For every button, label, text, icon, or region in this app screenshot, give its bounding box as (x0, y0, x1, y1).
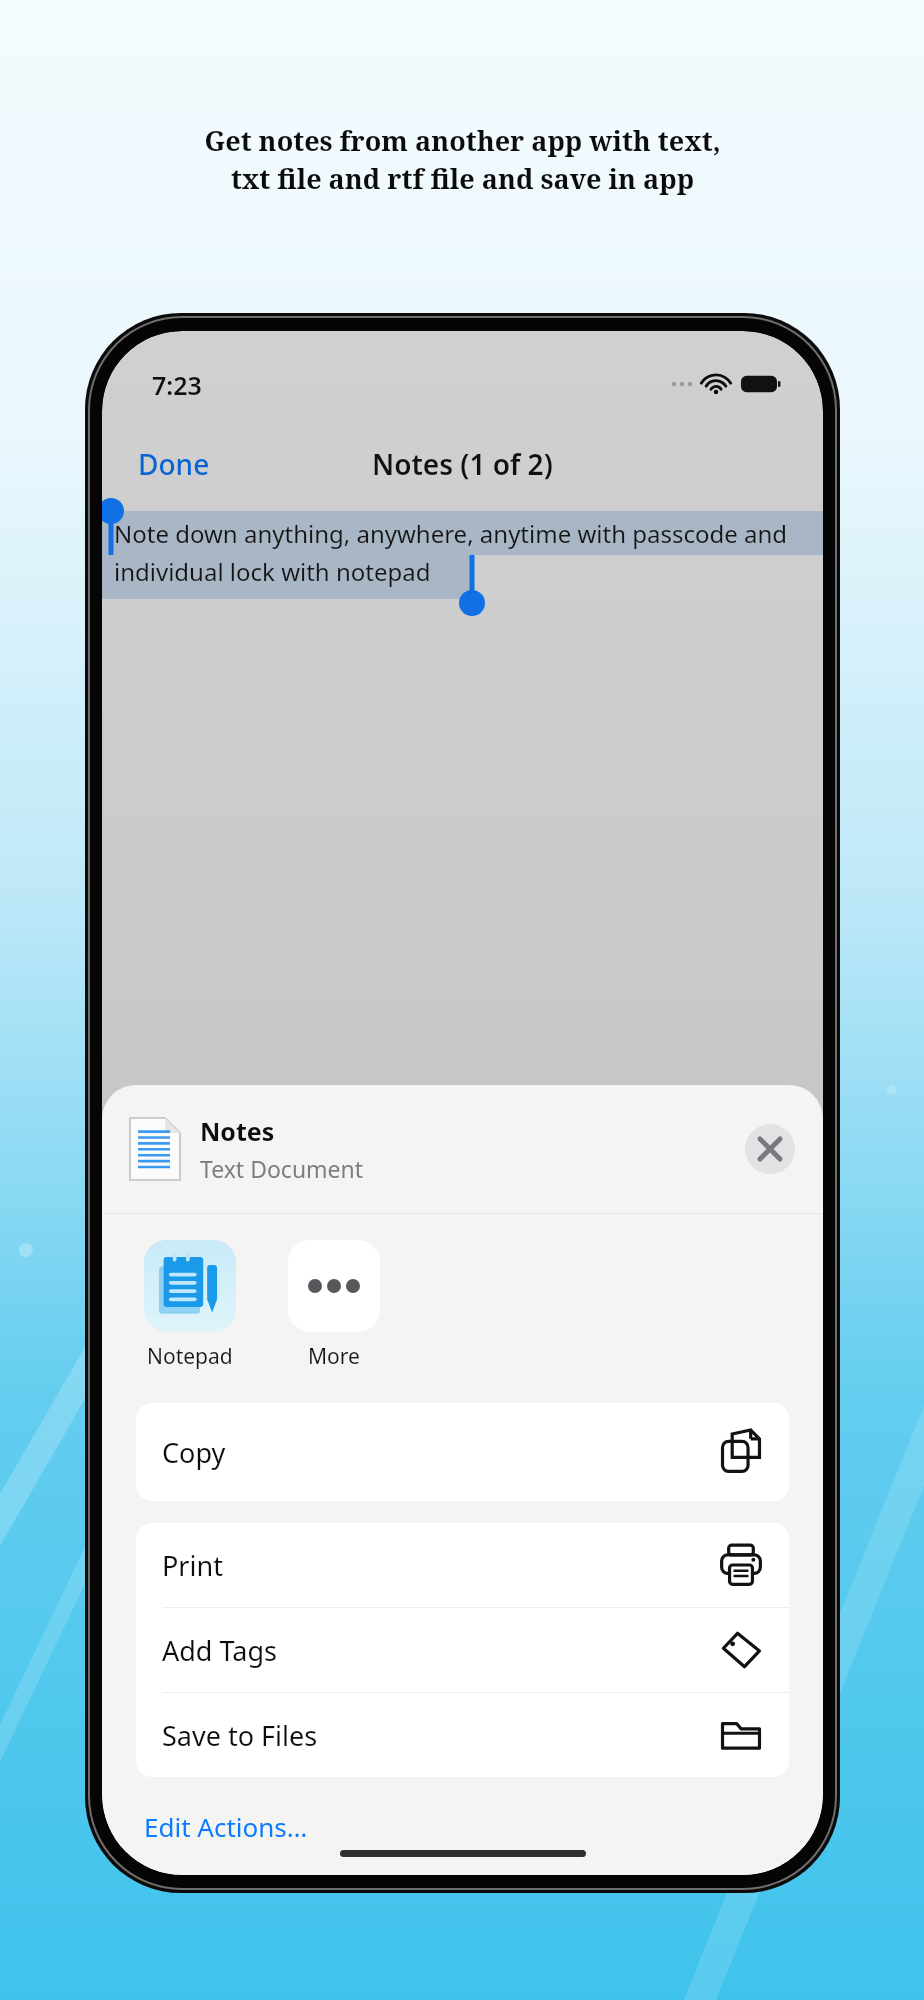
button[interactable]: Add Tags (136, 1608, 789, 1693)
staticText: Note down anything, anywhere, anytime wi… (114, 517, 788, 550)
staticText: 7:23 (152, 368, 202, 402)
staticText: Copy (162, 1434, 719, 1471)
staticText: Text Document (200, 1153, 364, 1184)
staticText: Get notes from another app with text, tx… (204, 122, 721, 197)
button[interactable]: Print (136, 1523, 789, 1608)
staticText: Save to Files (162, 1717, 719, 1754)
staticText: Done (138, 445, 210, 483)
button[interactable]: Notepad (138, 1240, 242, 1371)
staticText: Notes (1 of 2) (372, 445, 553, 483)
staticText: Notes (200, 1114, 275, 1148)
button[interactable]: More (282, 1240, 386, 1371)
staticText: Print (162, 1547, 719, 1584)
staticText: individual lock with notepad app. (114, 555, 472, 599)
staticText: Edit Actions… (144, 1809, 308, 1844)
button[interactable]: Save to Files (136, 1693, 789, 1777)
staticText: More (308, 1342, 360, 1371)
button[interactable]: Edit Actions… (102, 1803, 823, 1850)
button[interactable]: Done (102, 437, 226, 491)
staticText: Add Tags (162, 1632, 719, 1669)
staticText: Notepad (147, 1342, 233, 1371)
button[interactable]: Close (745, 1124, 795, 1174)
button[interactable]: Copy (136, 1403, 789, 1501)
